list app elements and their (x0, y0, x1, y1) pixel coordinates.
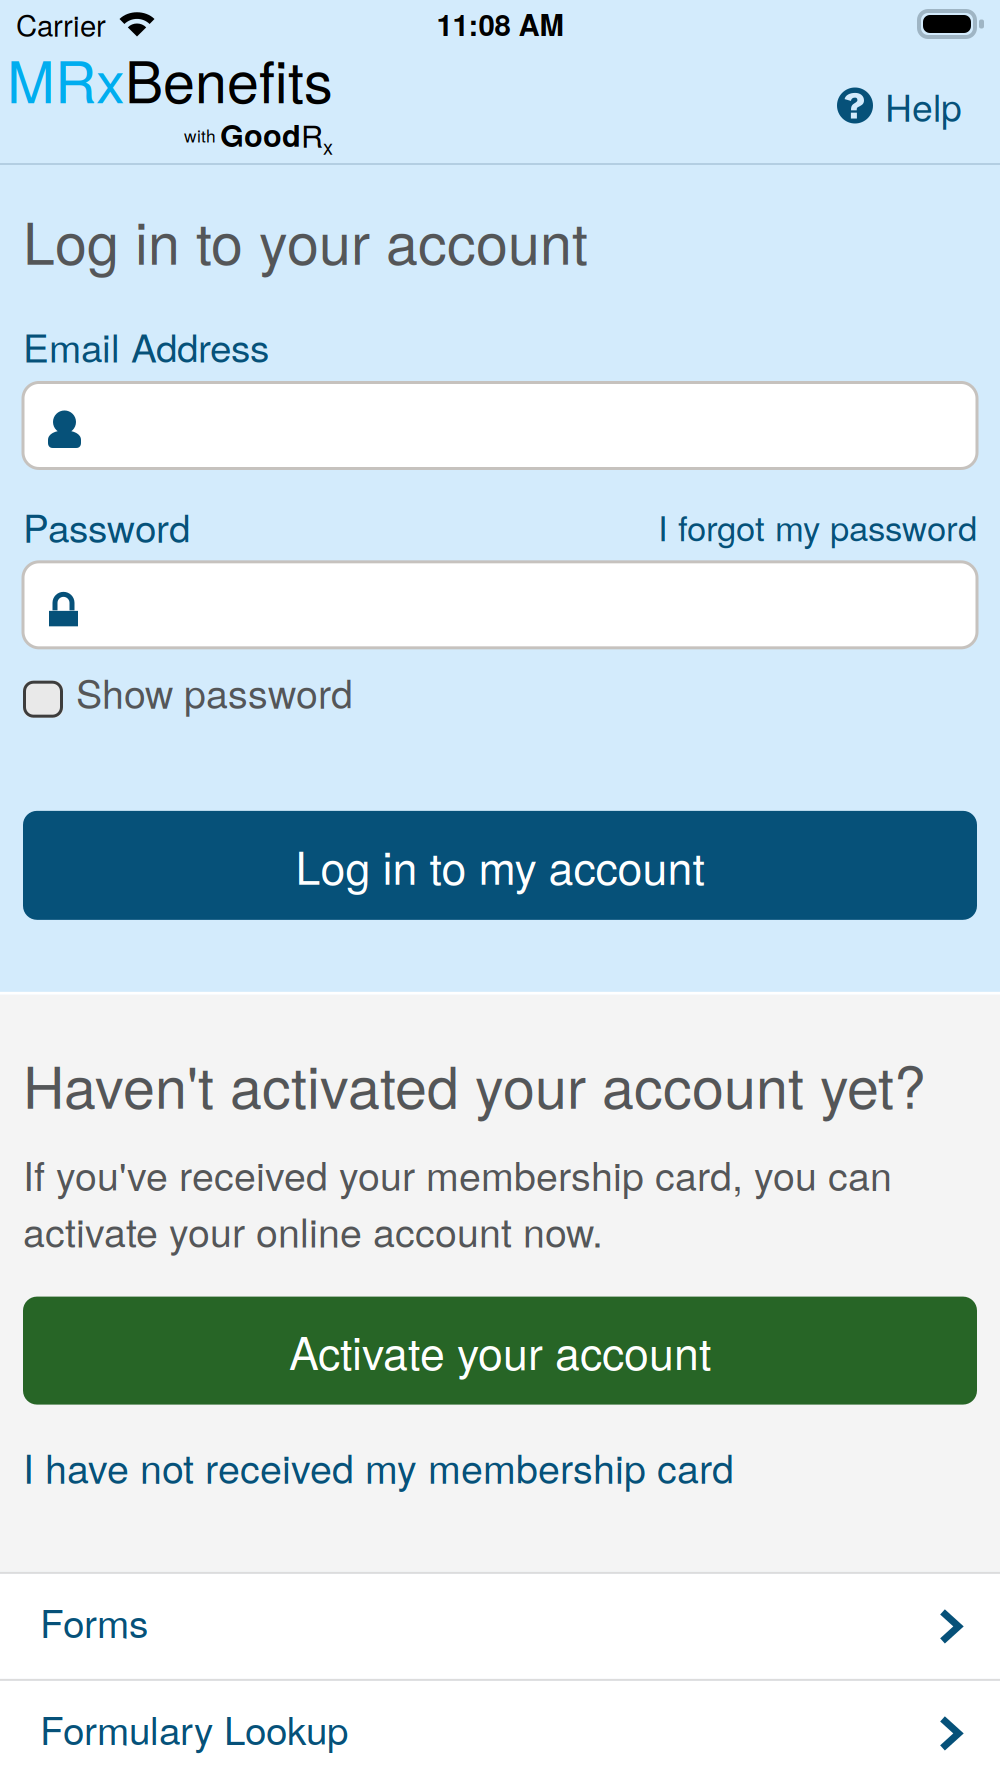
staticText: I forgot my password (658, 501, 977, 551)
staticText: Formulary Lookup (40, 1701, 348, 1756)
staticText: Haven't activated your account yet? (23, 1043, 926, 1125)
button[interactable]: Email Address (23, 382, 977, 468)
staticText: If you've received your membership card,… (23, 1146, 892, 1259)
button[interactable]: I forgot my password (658, 501, 977, 551)
staticText: Help (885, 79, 962, 132)
staticText: 11:08 AM (436, 3, 563, 45)
staticText: Show password (76, 664, 353, 720)
button[interactable]: Activate your account (23, 1297, 977, 1405)
staticText: Good (220, 113, 301, 156)
staticText: Forms (40, 1594, 148, 1649)
staticText: R (301, 113, 323, 156)
button[interactable]: Formulary Lookup (0, 1681, 1000, 1778)
staticText: Log in to your account (23, 199, 588, 281)
staticText: Email Address (23, 318, 269, 373)
button[interactable]: Log in to my account (23, 811, 977, 920)
button[interactable]: Show password (23, 682, 353, 719)
staticText: Benefits (125, 37, 333, 120)
staticText: MRx (7, 37, 125, 120)
button[interactable]: Help (833, 67, 966, 144)
staticText: x (323, 132, 333, 160)
staticText: Activate your account (289, 1319, 711, 1383)
staticText: Password (23, 498, 190, 554)
button[interactable]: I have not received my membership card (23, 1439, 734, 1495)
staticText: I have not received my membership card (23, 1439, 734, 1495)
button[interactable]: Password (23, 562, 977, 648)
button[interactable]: Forms (0, 1574, 1000, 1679)
staticText: Carrier (16, 3, 106, 45)
staticText: Log in to my account (295, 833, 704, 897)
staticText: with (184, 123, 216, 147)
